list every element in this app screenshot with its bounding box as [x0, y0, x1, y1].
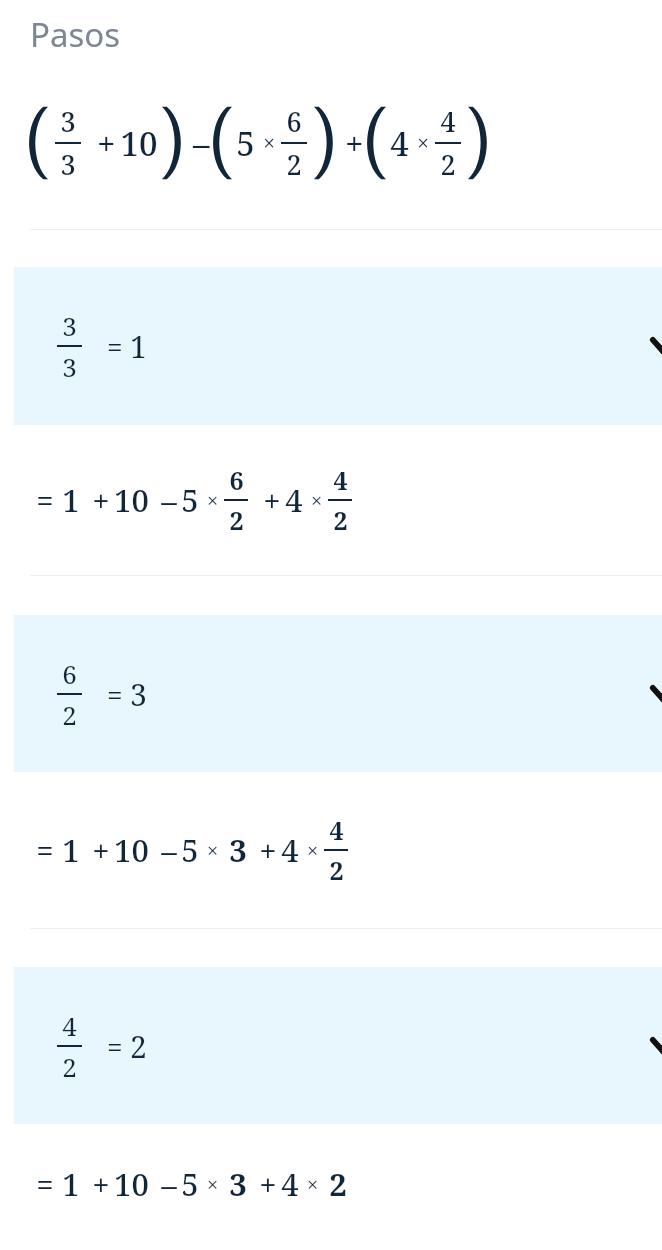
staticText: × [199, 1171, 221, 1198]
staticText: 2 [62, 1049, 77, 1084]
staticText: Pasos [30, 12, 121, 57]
staticText: × [255, 129, 278, 158]
staticText: 4 [390, 121, 409, 166]
staticText: × [199, 487, 221, 514]
staticText: 4 [285, 479, 303, 521]
staticText: + [247, 829, 281, 871]
staticText: – [149, 479, 181, 521]
staticText: 1 [130, 326, 147, 367]
staticText: 4 [333, 463, 348, 497]
staticText: + [247, 1163, 281, 1205]
staticText: 5 [236, 121, 255, 166]
staticText: × [409, 129, 432, 158]
staticText: 5 [181, 829, 199, 871]
button[interactable]: 6 [14, 615, 662, 772]
staticText: 10 [114, 1163, 149, 1205]
staticText: + [80, 479, 114, 521]
staticText: 2 [229, 503, 244, 537]
staticText: × [303, 487, 325, 514]
staticText: 2 [329, 853, 344, 887]
staticText: 10 [114, 479, 149, 521]
staticText: 3 [130, 674, 147, 715]
staticText: – [180, 121, 214, 166]
staticText: 5 [181, 1163, 199, 1205]
button[interactable]: 3 [14, 267, 662, 425]
staticText: = [85, 675, 130, 713]
staticText: = [36, 1163, 54, 1205]
button[interactable]: 4 [14, 967, 662, 1124]
staticText: + [251, 479, 285, 521]
staticText: 6 [229, 463, 244, 497]
staticText: × [299, 1171, 321, 1198]
button[interactable]: Expand step [646, 329, 662, 363]
staticText: 3 [221, 1163, 247, 1205]
staticText: 6 [286, 103, 302, 140]
staticText: + [80, 829, 114, 871]
staticText: 6 [62, 656, 77, 691]
staticText: 3 [62, 349, 77, 384]
staticText: – [149, 1163, 181, 1205]
button[interactable]: Expand step [646, 1029, 662, 1063]
staticText: 10 [120, 121, 158, 166]
staticText: 4 [329, 813, 344, 847]
staticText: 1 [54, 829, 80, 871]
staticText: = [36, 829, 54, 871]
staticText: = [85, 327, 130, 365]
staticText: + [80, 1163, 114, 1205]
staticText: 3 [62, 308, 77, 343]
staticText: × [299, 837, 321, 864]
staticText: 3 [221, 829, 247, 871]
staticText: = [36, 479, 54, 521]
staticText: 4 [440, 103, 456, 140]
staticText: = [85, 1027, 130, 1065]
staticText: 2 [440, 146, 456, 183]
staticText: 1 [54, 1163, 80, 1205]
staticText: 2 [62, 697, 77, 732]
staticText: 5 [181, 479, 199, 521]
staticText: 2 [321, 1163, 347, 1205]
button[interactable]: Expand step [646, 677, 662, 711]
staticText: + [332, 121, 368, 166]
staticText: × [199, 837, 221, 864]
staticText: 3 [60, 146, 76, 183]
staticText: 3 [60, 103, 76, 140]
staticText: – [149, 829, 181, 871]
staticText: 2 [333, 503, 348, 537]
staticText: 4 [62, 1008, 77, 1043]
staticText: 2 [130, 1026, 147, 1067]
staticText: + [84, 121, 120, 166]
staticText: 10 [114, 829, 149, 871]
staticText: 4 [281, 829, 299, 871]
staticText: 2 [286, 146, 302, 183]
staticText: 1 [54, 479, 80, 521]
staticText: 4 [281, 1163, 299, 1205]
